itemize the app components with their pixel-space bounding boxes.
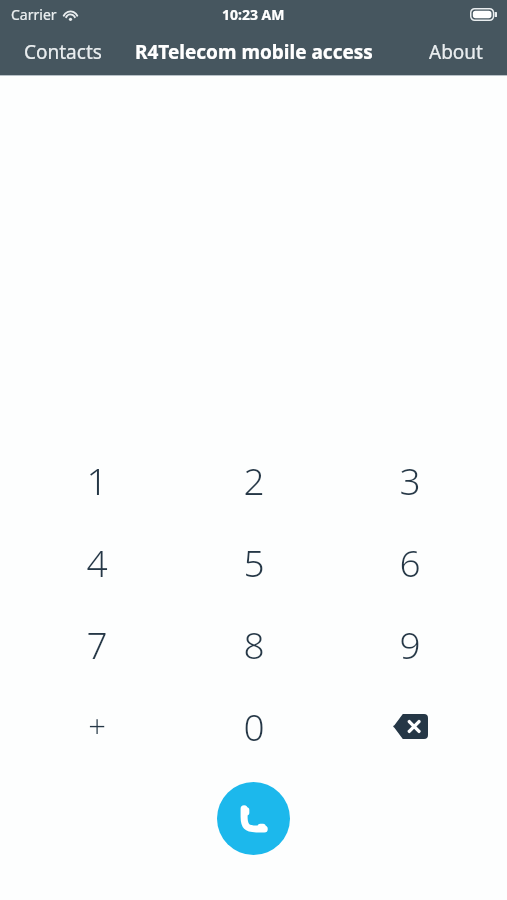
staticText: 3 — [399, 455, 421, 505]
staticText: Carrier — [11, 5, 57, 24]
button[interactable]: 2 — [194, 439, 314, 521]
staticText: 4 — [86, 537, 108, 587]
staticText: 1 — [86, 455, 108, 505]
button[interactable]: 6 — [350, 521, 470, 603]
staticText: Contacts — [24, 39, 102, 65]
button[interactable]: 9 — [350, 603, 470, 685]
staticText: 2 — [243, 455, 265, 505]
button[interactable]: Call — [217, 782, 290, 855]
button[interactable]: Backspace — [350, 685, 470, 767]
button[interactable]: 7 — [37, 603, 157, 685]
staticText: 8 — [243, 619, 265, 669]
staticText: 6 — [399, 537, 421, 587]
staticText: 9 — [399, 619, 421, 669]
button[interactable]: 4 — [37, 521, 157, 603]
staticText: 5 — [243, 537, 265, 587]
button[interactable]: + — [37, 685, 157, 767]
button[interactable]: 5 — [194, 521, 314, 603]
staticText: 10:23 AM — [222, 5, 285, 24]
staticText: 7 — [86, 619, 108, 669]
button[interactable]: 1 — [37, 439, 157, 521]
staticText: 0 — [243, 701, 265, 751]
staticText: About — [429, 39, 483, 65]
staticText: + — [88, 705, 106, 747]
button[interactable]: 8 — [194, 603, 314, 685]
button[interactable]: Contacts — [0, 29, 126, 75]
button[interactable]: 0 — [194, 685, 314, 767]
staticText: R4Telecom mobile access — [135, 39, 373, 65]
button[interactable]: 3 — [350, 439, 470, 521]
button[interactable]: About — [405, 29, 507, 75]
